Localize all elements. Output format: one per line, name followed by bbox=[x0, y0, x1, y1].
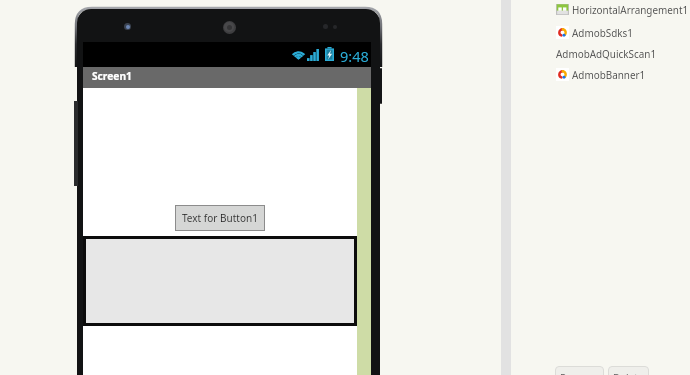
button[interactable]: Delete bbox=[608, 366, 649, 375]
button[interactable]: Screen1 bbox=[83, 67, 371, 88]
button[interactable]: Text for Button1 bbox=[175, 205, 265, 231]
staticText: AdmobBanner1 bbox=[572, 68, 646, 81]
button[interactable]: HorizontalArrangement1 bbox=[552, 2, 690, 16]
staticText: HorizontalArrangement1 bbox=[572, 3, 689, 16]
button[interactable]: AdmobBanner1 bbox=[552, 67, 690, 81]
staticText: Delete bbox=[613, 371, 644, 375]
staticText: AdmobAdQuickScan1 bbox=[556, 47, 657, 60]
button[interactable]: HorizontalArrangement1 component bbox=[83, 236, 357, 326]
staticText: Rename bbox=[560, 371, 599, 375]
staticText: Text for Button1 bbox=[182, 211, 258, 225]
staticText: Screen1 bbox=[92, 69, 132, 83]
button[interactable]: AdmobAdQuickScan1 bbox=[552, 46, 690, 60]
staticText: 9:48 bbox=[340, 46, 369, 66]
button[interactable]: Rename bbox=[555, 366, 604, 375]
button[interactable]: AdmobSdks1 bbox=[552, 25, 690, 39]
staticText: AdmobSdks1 bbox=[572, 26, 633, 39]
